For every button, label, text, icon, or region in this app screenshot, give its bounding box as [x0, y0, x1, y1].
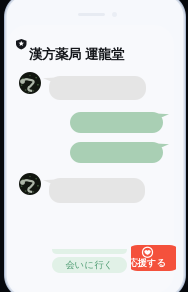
staticText: 漢方薬局 運龍堂 [29, 46, 124, 62]
button[interactable]: 応援する [131, 245, 176, 271]
staticText: 会いに行く [65, 259, 113, 271]
button[interactable]: 会いに行く [52, 257, 127, 273]
staticText: 応援する [128, 257, 166, 269]
